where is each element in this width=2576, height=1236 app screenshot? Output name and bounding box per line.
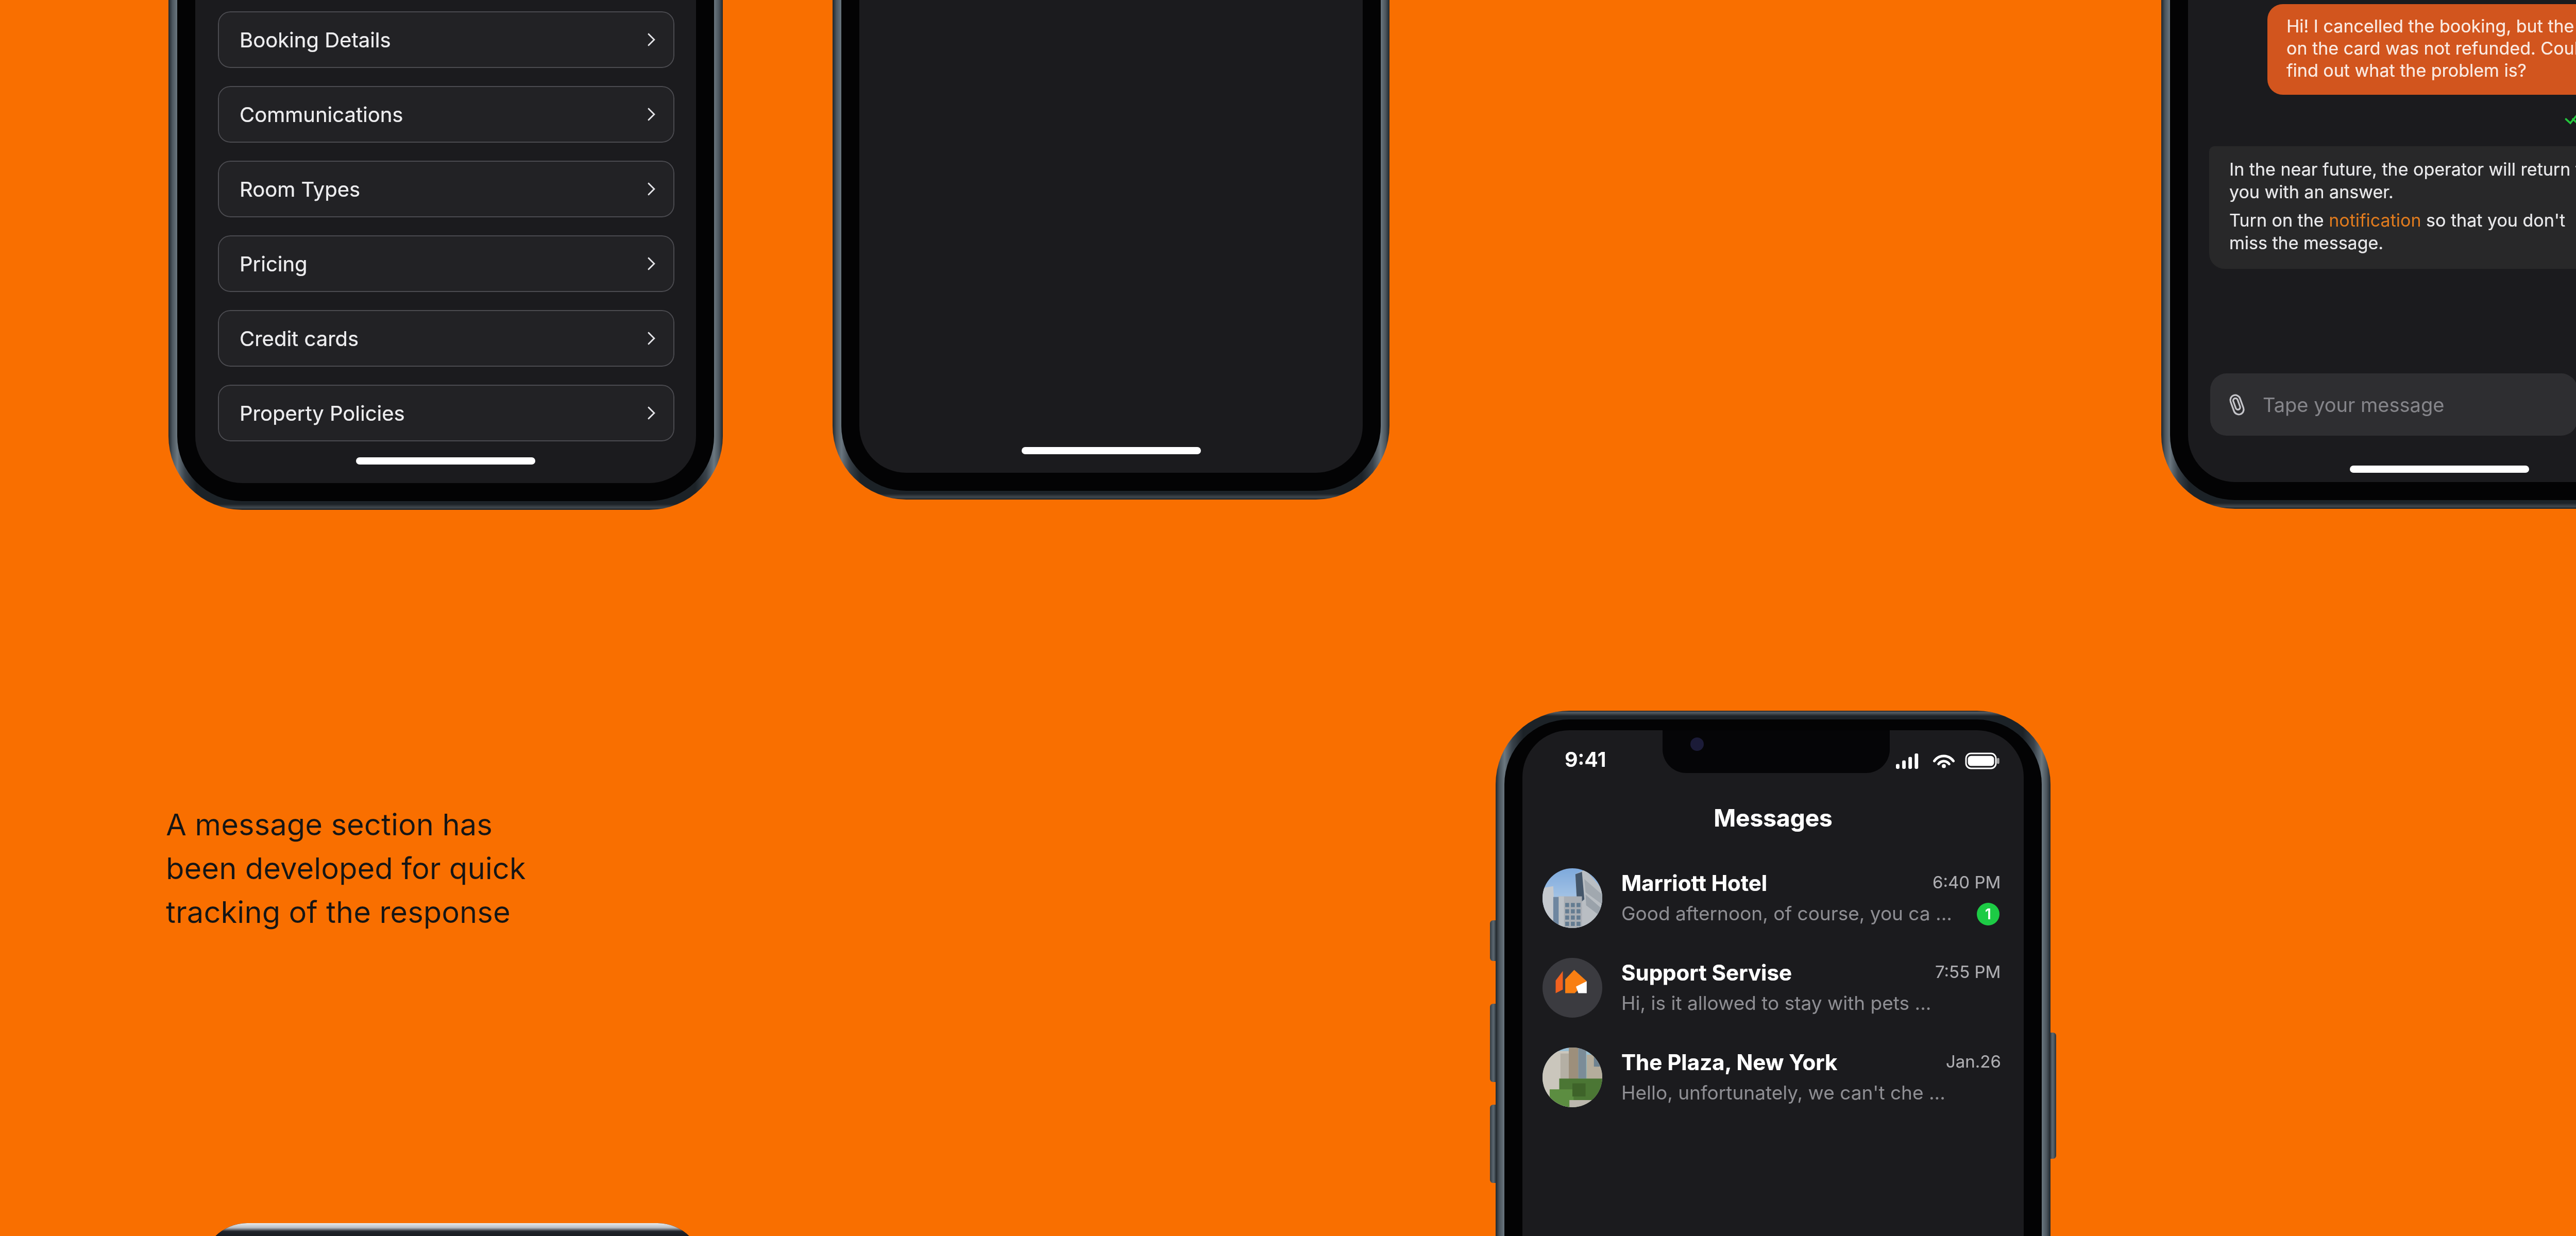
- button[interactable]: Pricing: [218, 235, 674, 292]
- button[interactable]: Credit cards: [218, 310, 674, 367]
- staticText: In the near future, the operator will re…: [2229, 159, 2576, 202]
- staticText: Turn on the notification so that you don…: [2229, 210, 2576, 253]
- button[interactable]: Marriott Hotel: [1522, 853, 2024, 943]
- staticText: 6:40 PM: [1933, 872, 2001, 892]
- other: Attach file: [2226, 393, 2248, 416]
- staticText: Hi, is it allowed to stay with pets ...: [1621, 991, 1931, 1015]
- staticText: The Plaza, New York: [1621, 1049, 1838, 1075]
- button[interactable]: Room Types: [218, 161, 674, 217]
- staticText: Marriott Hotel: [1621, 870, 1768, 896]
- staticText: Jan.26: [1946, 1051, 2001, 1072]
- staticText: Tape your message: [2263, 393, 2445, 417]
- staticText: A message section has been developed for…: [166, 806, 526, 930]
- staticText: Room Types: [240, 177, 647, 201]
- button[interactable]: Booking Details: [218, 11, 674, 68]
- staticText: Support Servise: [1621, 959, 1792, 986]
- staticText: 7:55 PM: [1935, 962, 2001, 982]
- button[interactable]: Attach file: [2210, 373, 2576, 436]
- staticText: Hi! I cancelled the booking, but the mon…: [2286, 15, 2576, 81]
- staticText: 9:41: [1565, 747, 1606, 771]
- staticText: Communications: [240, 102, 647, 127]
- staticText: Good afternoon, of course, you ca ...: [1621, 902, 1953, 925]
- staticText: Booking Details: [240, 27, 647, 52]
- staticText: Messages: [1522, 803, 2024, 832]
- staticText: 1: [1985, 905, 1991, 923]
- staticText: Credit cards: [240, 326, 647, 351]
- button[interactable]: Support Servise: [1522, 943, 2024, 1033]
- button[interactable]: The Plaza, New York: [1522, 1033, 2024, 1122]
- staticText: Pricing: [240, 251, 647, 276]
- staticText: Property Policies: [240, 401, 647, 425]
- button[interactable]: Property Policies: [218, 385, 674, 441]
- button[interactable]: Communications: [218, 86, 674, 143]
- staticText: Hello, unfortunately, we can't che ...: [1621, 1081, 1945, 1104]
